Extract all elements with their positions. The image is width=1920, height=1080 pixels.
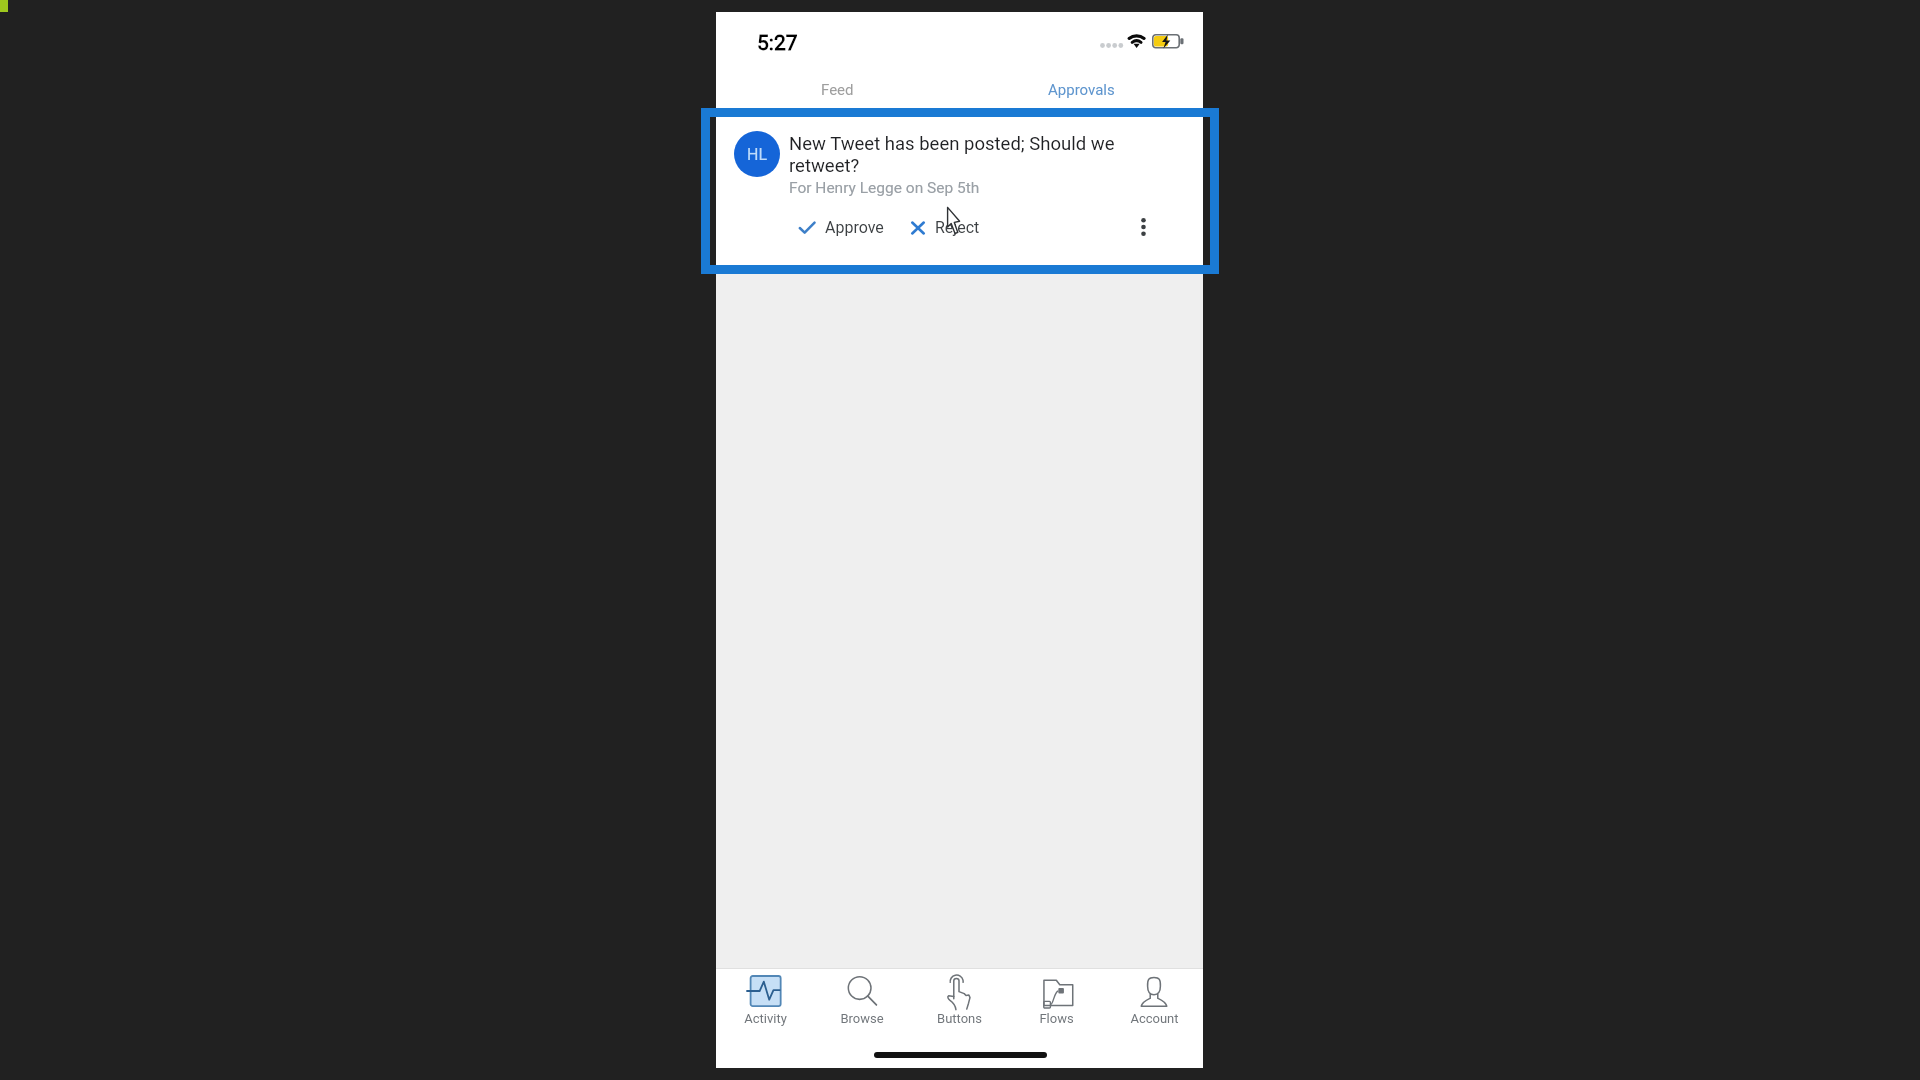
staticText: For Henry Legge on Sep 5th: [789, 179, 980, 197]
button[interactable]: Activity: [721, 968, 809, 1048]
button[interactable]: Approvals: [959, 76, 1203, 103]
button[interactable]: Approve: [798, 215, 884, 240]
staticText: Buttons: [937, 1011, 982, 1026]
button[interactable]: Account: [1110, 968, 1198, 1048]
staticText: Browse: [840, 1011, 884, 1026]
button[interactable]: Browse: [818, 968, 906, 1048]
button[interactable]: Flows: [1012, 968, 1100, 1048]
staticText: Approvals: [1048, 81, 1115, 99]
button[interactable]: HL: [716, 109, 1203, 270]
staticText: Reject: [935, 218, 980, 237]
staticText: Account: [1130, 1011, 1179, 1026]
button[interactable]: Feed: [716, 76, 959, 103]
staticText: Feed: [821, 81, 854, 99]
button[interactable]: Buttons: [915, 968, 1003, 1048]
button[interactable]: More options: [1125, 209, 1161, 245]
button[interactable]: Reject: [910, 215, 980, 240]
staticText: HL: [747, 145, 768, 164]
staticText: Activity: [744, 1011, 787, 1026]
staticText: 5:27: [757, 31, 798, 56]
staticText: New Tweet has been posted; Should we ret…: [789, 133, 1129, 176]
staticText: Approve: [825, 218, 884, 237]
staticText: Flows: [1039, 1011, 1074, 1026]
